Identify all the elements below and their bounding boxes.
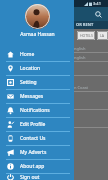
staticText: Sign out [20, 174, 40, 180]
button[interactable]: Notifications [0, 104, 74, 117]
staticText: Setting [20, 79, 37, 86]
button[interactable]: HOTELS [77, 31, 95, 40]
button[interactable]: Location [0, 62, 74, 75]
staticText: HOTELS [80, 33, 93, 38]
staticText: LA [100, 33, 105, 38]
button[interactable]: Edit Profile [0, 118, 74, 131]
staticText: Edit Profile [20, 121, 46, 128]
button[interactable]: Setting [0, 76, 74, 89]
staticText: About app [20, 163, 45, 170]
button[interactable]: Profile photo [25, 4, 50, 29]
staticText: Asmaa Hassan [20, 31, 55, 38]
staticText: nglish [74, 46, 86, 51]
button[interactable]: Search [93, 9, 104, 20]
staticText: Home [20, 51, 35, 58]
button[interactable]: Messages [0, 90, 74, 103]
staticText: Messages [20, 93, 44, 100]
button[interactable]: About app [0, 160, 74, 173]
button[interactable]: LA [97, 31, 108, 40]
staticText: nglish [74, 55, 86, 60]
staticText: Notifications [20, 107, 50, 114]
button[interactable]: Contact Us [0, 132, 74, 145]
button[interactable]: Home [0, 48, 74, 61]
staticText: 3:41 [93, 1, 101, 6]
button[interactable]: My Adverts [0, 146, 74, 159]
staticText: OR RENT [76, 22, 94, 27]
button[interactable]: Sign out [0, 174, 74, 180]
staticText: n Coast [74, 85, 89, 90]
staticText: Contact Us [20, 135, 46, 142]
staticText: My Adverts [20, 149, 47, 156]
staticText: Location [20, 65, 41, 72]
